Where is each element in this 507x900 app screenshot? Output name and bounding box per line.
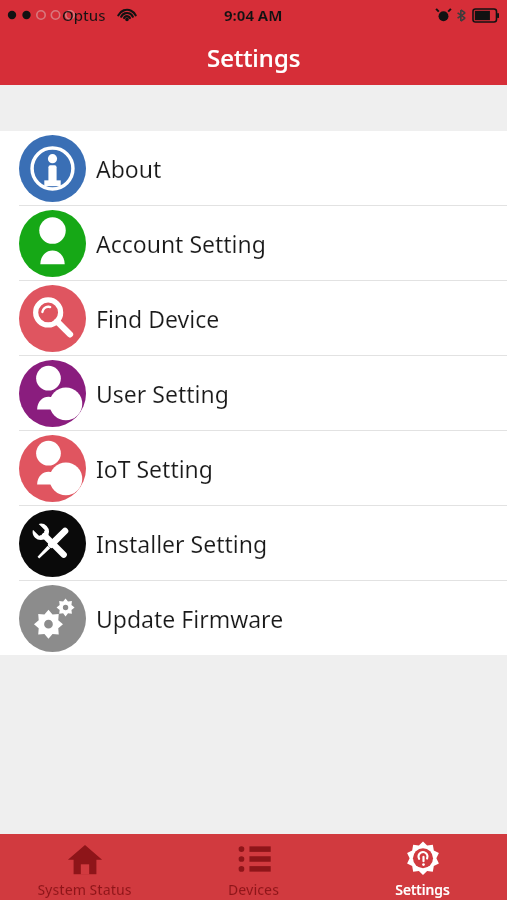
other: Settings <box>404 840 442 878</box>
button[interactable]: User Setting <box>0 356 507 430</box>
staticText: Installer Setting <box>96 528 268 559</box>
staticText: 9:04 AM <box>224 5 283 25</box>
staticText: User Setting <box>96 378 229 409</box>
staticText: About <box>96 153 162 184</box>
staticText: System Status <box>37 880 132 899</box>
button[interactable]: Installer Setting <box>0 506 507 580</box>
staticText: Account Setting <box>96 228 266 259</box>
button[interactable]: Find Device <box>0 281 507 355</box>
button[interactable]: System Status <box>0 834 169 900</box>
button[interactable]: Devices <box>169 834 338 900</box>
button[interactable]: Update Firmware <box>0 581 507 655</box>
staticText: Find Device <box>96 303 220 334</box>
button[interactable]: Account Setting <box>0 206 507 280</box>
staticText: Devices <box>228 880 279 899</box>
button[interactable]: Settings <box>338 834 507 900</box>
staticText: Settings <box>395 880 450 899</box>
staticText: Settings <box>207 41 301 74</box>
other: System Status <box>66 840 104 878</box>
button[interactable]: About <box>0 131 507 205</box>
staticText: Optus <box>62 5 106 25</box>
staticText: Update Firmware <box>96 603 284 634</box>
button[interactable]: IoT Setting <box>0 431 507 505</box>
other: Devices <box>235 840 273 878</box>
staticText: IoT Setting <box>96 453 213 484</box>
